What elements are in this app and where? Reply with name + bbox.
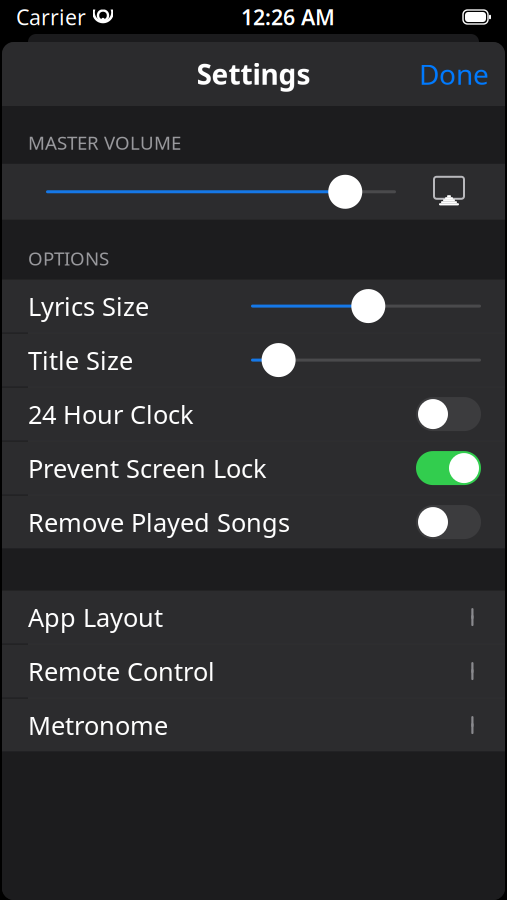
button[interactable]: Done xyxy=(403,45,505,103)
staticText: Remove Played Songs xyxy=(28,505,290,539)
button[interactable]: Prevent Screen Lock xyxy=(2,442,505,495)
staticText: Prevent Screen Lock xyxy=(28,451,267,485)
staticText: MASTER VOLUME xyxy=(28,130,181,155)
button[interactable]: App Layout xyxy=(2,591,505,644)
button[interactable]: Remote Control xyxy=(2,645,505,698)
staticText: Done xyxy=(419,55,489,93)
button[interactable]: Metronome xyxy=(2,699,505,752)
staticText: OPTIONS xyxy=(28,246,109,271)
staticText: 24 Hour Clock xyxy=(28,397,194,431)
staticText: Lyrics Size xyxy=(28,289,149,323)
staticText: 12:26 AM xyxy=(241,3,335,31)
staticText: Remote Control xyxy=(28,654,215,688)
staticText: App Layout xyxy=(28,600,163,634)
staticText: Settings xyxy=(196,55,310,93)
button[interactable]: 24 Hour Clock xyxy=(2,388,505,441)
staticText: Title Size xyxy=(28,343,133,377)
staticText: Carrier xyxy=(16,3,86,31)
staticText: Metronome xyxy=(28,708,168,742)
button[interactable]: Remove Played Songs xyxy=(2,496,505,549)
